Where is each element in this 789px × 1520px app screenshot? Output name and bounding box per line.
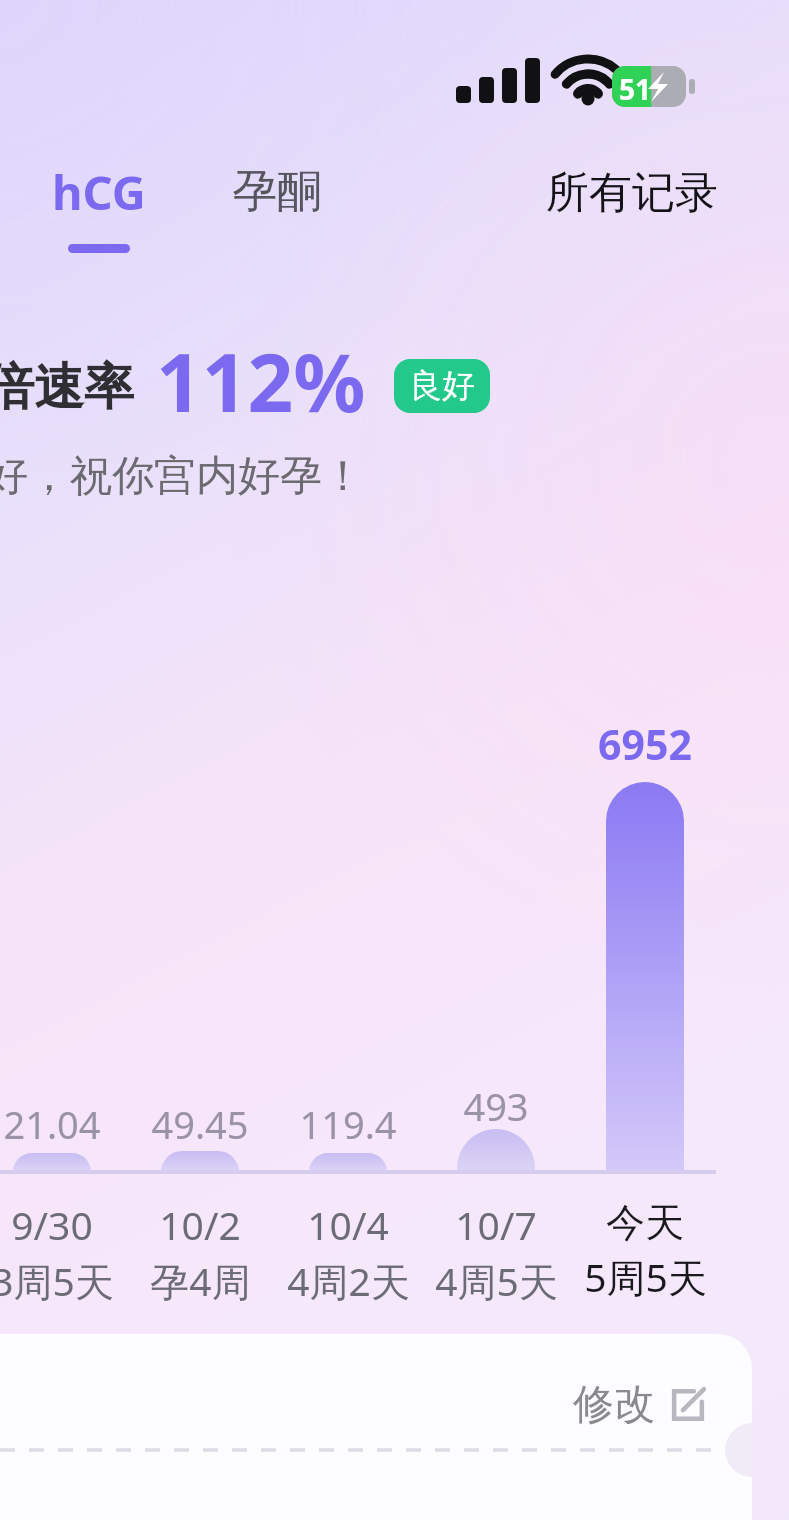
staticText: 112% <box>156 326 366 435</box>
button[interactable]: 今天 <box>550 1198 740 1303</box>
staticText: 10/7 <box>455 1198 537 1251</box>
other: Edit <box>667 1384 709 1426</box>
staticText: 493 <box>401 1080 591 1132</box>
staticText: 孕4周 <box>150 1254 251 1307</box>
button[interactable]: hCG <box>52 160 146 253</box>
staticText: 10/4 <box>307 1198 389 1251</box>
button[interactable]: 10/4 <box>253 1198 443 1307</box>
button[interactable]: 孕酮 <box>232 163 322 220</box>
staticText: 所有记录 <box>546 166 718 220</box>
button[interactable]: 10/7 <box>401 1198 591 1307</box>
staticText: 119.4 <box>253 1098 443 1150</box>
staticText: 孕酮 <box>232 163 322 220</box>
staticText: 10/2 <box>159 1198 241 1251</box>
button[interactable]: 修改 <box>568 1374 714 1436</box>
staticText: 良好 <box>409 365 475 407</box>
staticText: 49.45 <box>105 1098 295 1150</box>
staticText: 51 <box>619 70 652 108</box>
staticText: 5周5天 <box>584 1250 707 1303</box>
staticText: 好，祝你宫内好孕！ <box>0 450 364 503</box>
button[interactable]: 9/30 <box>0 1198 147 1307</box>
staticText: 21.04 <box>0 1098 147 1150</box>
button[interactable]: 良好 <box>394 359 490 413</box>
button[interactable]: 10/2 <box>105 1198 295 1307</box>
staticText: 修改 <box>573 1379 655 1431</box>
staticText: 4周2天 <box>287 1254 410 1307</box>
staticText: 4周5天 <box>435 1254 558 1307</box>
staticText: 6952 <box>550 716 740 772</box>
staticText: 倍速率 <box>0 356 134 419</box>
staticText: 9/30 <box>11 1198 93 1251</box>
staticText: 今天 <box>606 1198 684 1247</box>
button[interactable]: 所有记录 <box>546 166 718 220</box>
staticText: hCG <box>52 160 146 224</box>
staticText: 3周5天 <box>0 1254 114 1307</box>
